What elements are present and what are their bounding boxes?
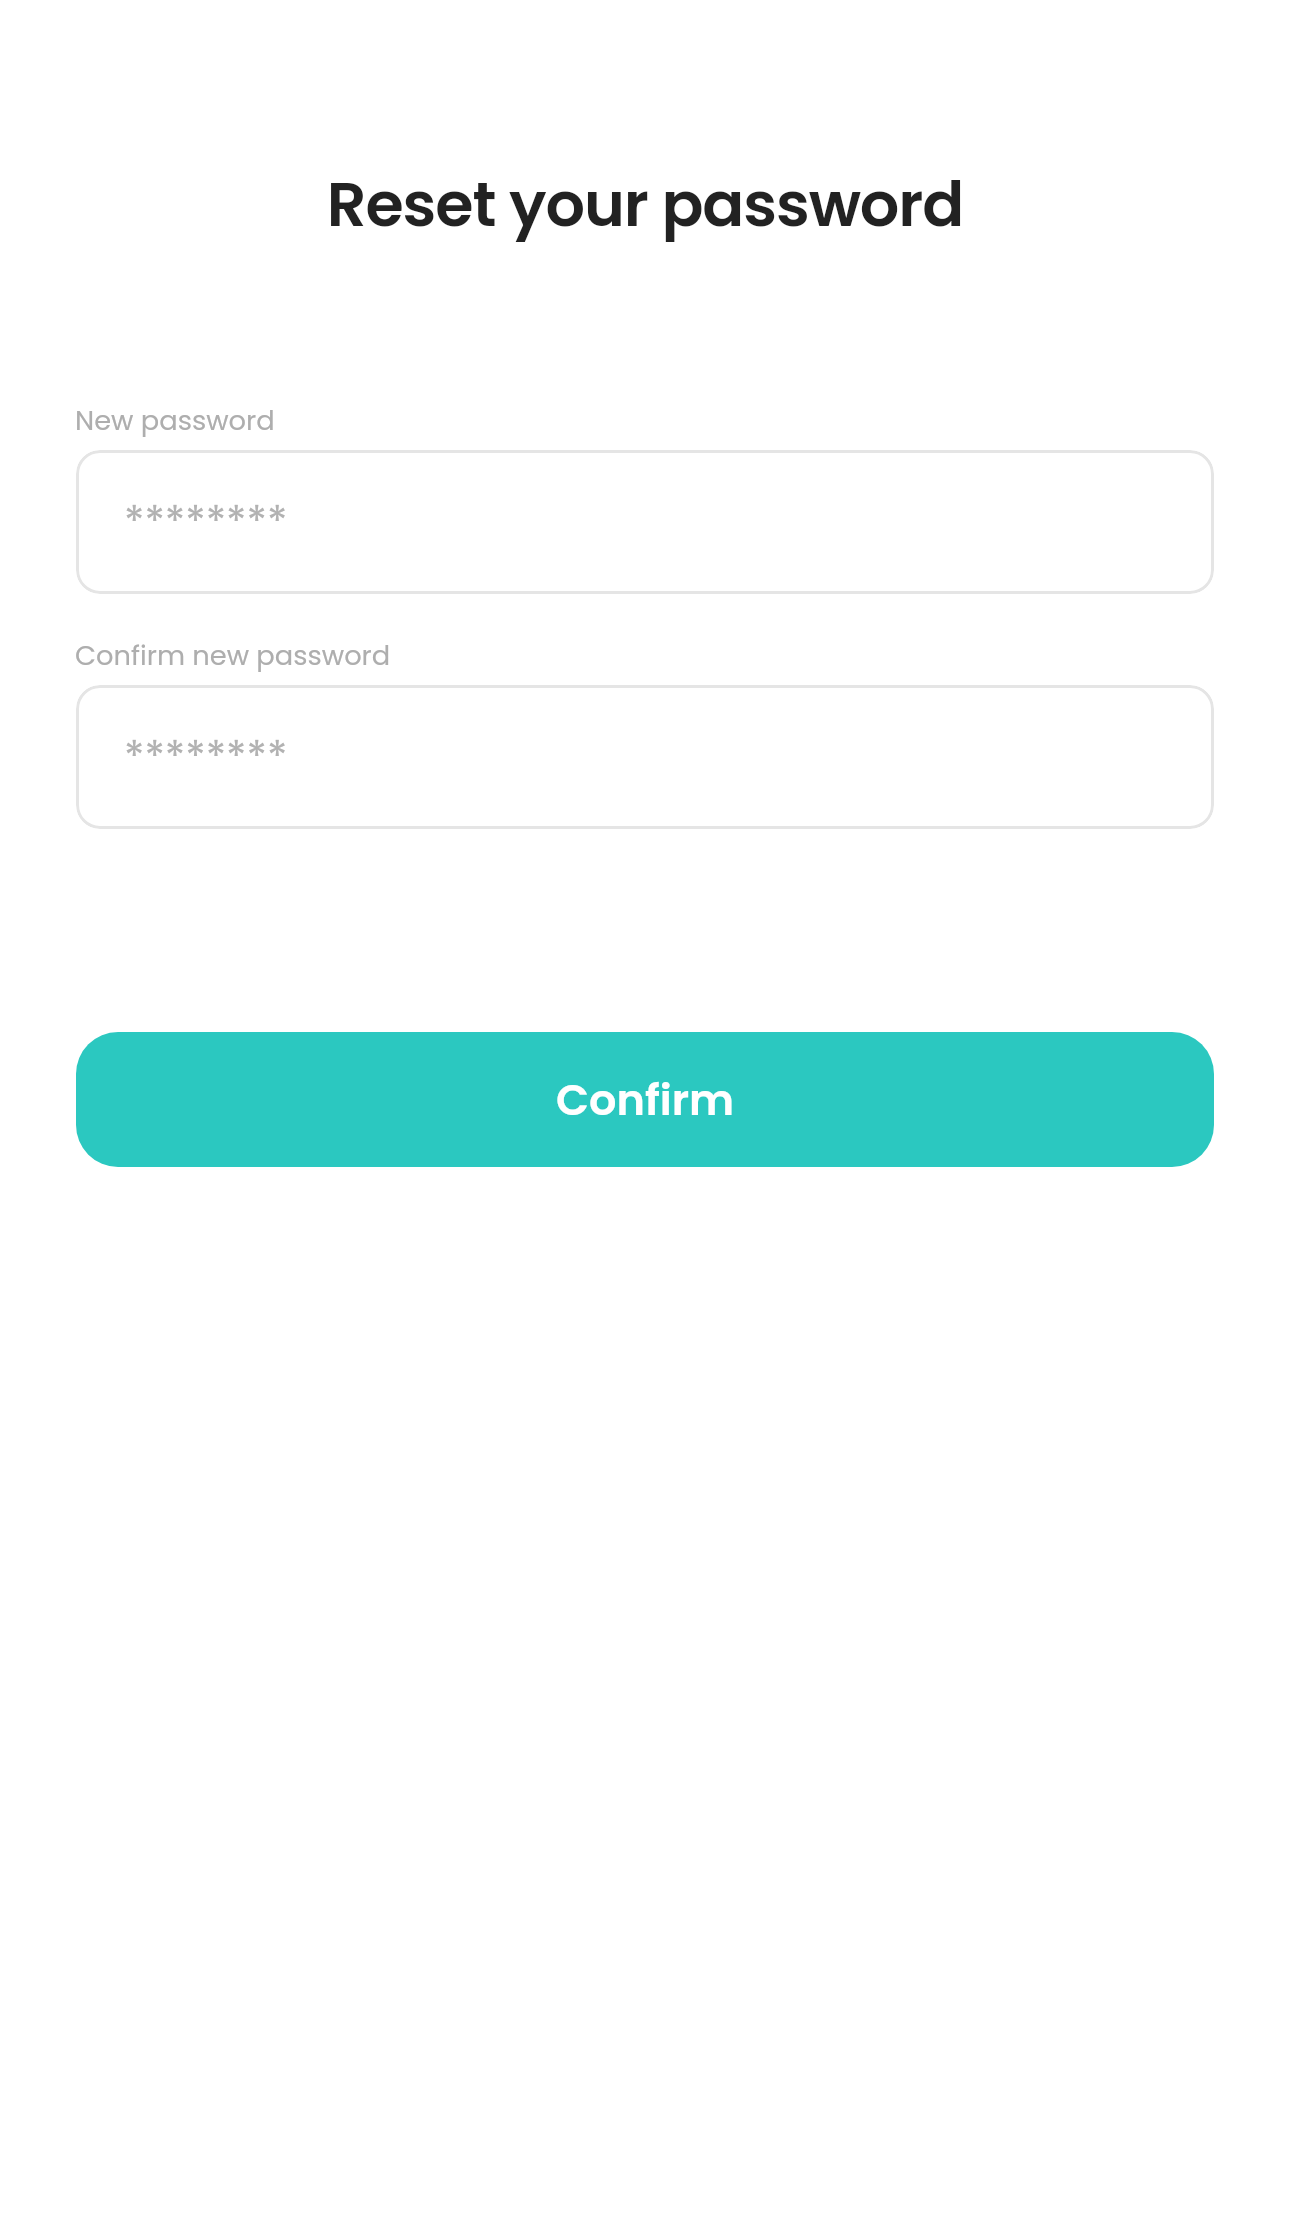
staticText: Confirm [556, 1070, 735, 1130]
button[interactable]: Confirm new password [76, 685, 1214, 829]
button[interactable]: New password [76, 450, 1214, 594]
staticText: Reset your password [0, 161, 1290, 248]
staticText: New password [75, 401, 275, 439]
staticText: ******** [124, 728, 288, 787]
staticText: ******** [124, 493, 288, 552]
button[interactable]: Confirm [76, 1032, 1214, 1167]
staticText: Confirm new password [75, 636, 391, 674]
